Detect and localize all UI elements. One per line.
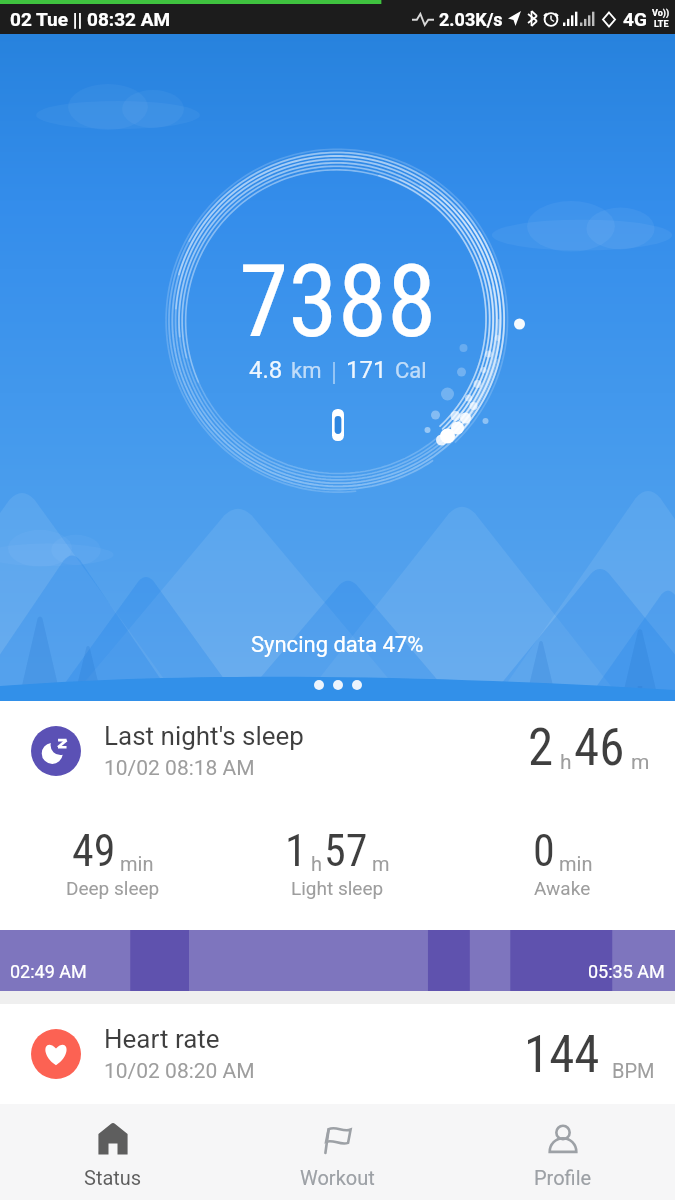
staticText: 1 <box>285 825 307 877</box>
staticText: Profile <box>534 1166 592 1189</box>
staticText: Syncing data 47% <box>251 632 424 658</box>
staticText: 2 <box>528 718 554 778</box>
staticText: 02 Tue || 08:32 AM <box>10 8 171 30</box>
staticText: h <box>311 852 323 875</box>
staticText: min <box>559 852 593 875</box>
button[interactable]: Last night's sleep <box>0 701 675 800</box>
staticText: Deep sleep <box>66 877 160 899</box>
button[interactable]: Workout <box>225 1104 450 1200</box>
staticText: Heart rate <box>104 1024 220 1054</box>
staticText: 144 <box>524 1025 600 1085</box>
staticText: 4G <box>623 8 647 30</box>
other: Band <box>332 409 344 441</box>
staticText: Last night's sleep <box>104 721 304 751</box>
staticText: LTE <box>654 19 669 30</box>
staticText: Light sleep <box>291 877 384 899</box>
staticText: Awake <box>534 877 591 899</box>
staticText: 10/02 08:18 AM <box>104 756 255 781</box>
staticText: Status <box>84 1166 142 1189</box>
staticText: m <box>631 750 650 775</box>
staticText: min <box>120 852 154 875</box>
staticText: km <box>291 358 322 384</box>
staticText: h <box>560 750 572 775</box>
staticText: 0 <box>533 825 555 877</box>
staticText: Cal <box>395 358 427 384</box>
staticText: m <box>372 852 390 875</box>
staticText: BPM <box>612 1059 655 1082</box>
staticText: 4.8 <box>249 356 283 384</box>
staticText: 46 <box>574 718 625 778</box>
staticText: 7388 <box>239 243 437 360</box>
staticText: Workout <box>300 1166 375 1189</box>
button[interactable]: Status <box>0 1104 225 1200</box>
staticText: 2.03K/s <box>439 9 503 30</box>
button[interactable]: Heart rate <box>0 1004 675 1104</box>
staticText: 171 <box>346 356 387 384</box>
staticText: 02:49 AM <box>10 961 87 982</box>
button[interactable]: Profile <box>450 1104 675 1200</box>
staticText: Vo)) <box>652 8 670 19</box>
staticText: 49 <box>72 825 116 877</box>
staticText: 05:35 AM <box>588 961 665 982</box>
staticText: 57 <box>324 825 368 877</box>
staticText: 10/02 08:20 AM <box>104 1059 255 1084</box>
